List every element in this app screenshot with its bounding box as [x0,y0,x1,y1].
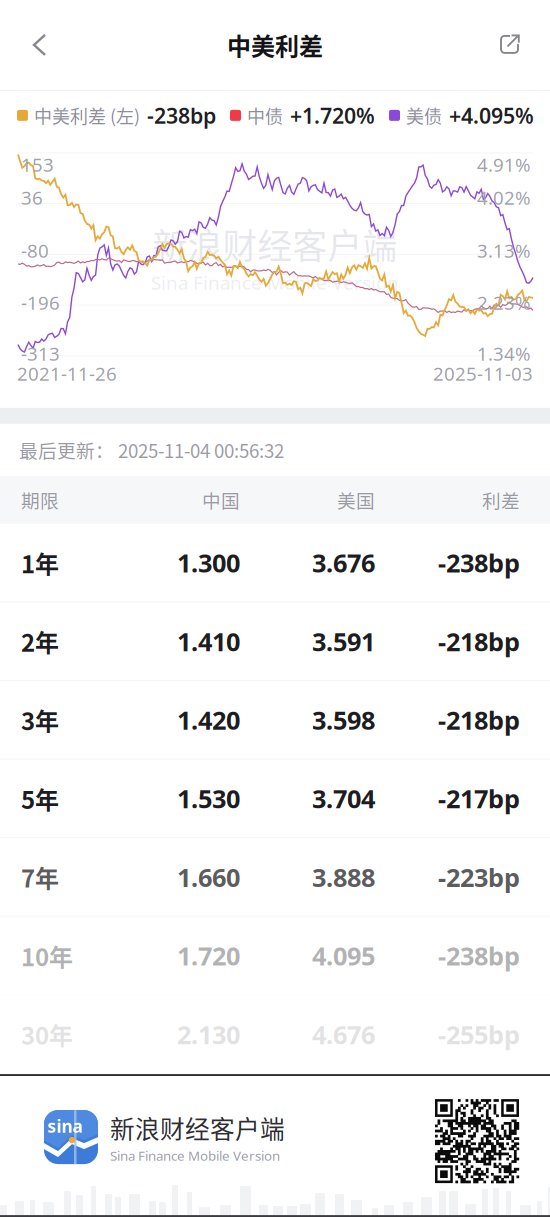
staticText: 10年 [21,938,73,973]
staticText: 中美利差 [227,27,323,62]
staticText: Sina Finance Mobile Version [110,1147,280,1164]
staticText: 4.095 [312,939,375,972]
staticText: sina [47,1115,82,1138]
staticText: 5年 [21,781,59,816]
staticText: 美国 [337,486,375,513]
staticText: -217bp [438,782,520,815]
button[interactable]: 5年 [0,760,550,838]
staticText: 中美利差 (左) [34,102,140,128]
staticText: -313 [21,341,60,366]
staticText: 1.530 [177,782,240,815]
button[interactable]: Share [479,16,541,74]
staticText: +4.095% [449,101,534,129]
staticText: 2021-11-26 [17,361,117,386]
staticText: 1.660 [177,860,240,894]
staticText: 3.704 [312,782,375,815]
staticText: 4.91% [477,152,531,177]
staticText: 3年 [21,702,59,737]
staticText: 1.34% [477,341,531,366]
staticText: -223bp [438,860,520,894]
staticText: 3.598 [312,703,375,737]
staticText: Sina Finance Mobile Version [151,270,399,295]
button[interactable]: 3年 [0,681,550,760]
staticText: 153 [21,152,54,177]
staticText: 1.720 [177,939,240,972]
staticText: +1.720% [290,101,375,129]
staticText: 利差 [482,486,520,513]
button[interactable]: 1年 [0,524,550,602]
staticText: 中国 [202,486,240,513]
staticText: -238bp [438,939,520,972]
staticText: 4.676 [312,1017,375,1051]
staticText: -196 [21,290,60,315]
staticText: -80 [21,238,49,263]
staticText: 3.676 [312,546,375,579]
staticText: 1.420 [177,703,240,737]
staticText: 30年 [21,1017,73,1052]
staticText: 7年 [21,860,59,894]
button[interactable]: 7年 [0,838,550,917]
staticText: 4.02% [477,185,531,210]
staticText: 新浪财经客户端 [110,1110,285,1146]
staticText: 36 [21,185,43,210]
staticText: 新浪财经客户端 [152,219,397,269]
staticText: -218bp [438,703,520,737]
staticText: 3.591 [312,624,375,658]
staticText: 2年 [21,624,59,659]
staticText: 2.23% [477,290,531,315]
staticText: -238bp [147,101,216,129]
staticText: -238bp [438,546,520,579]
staticText: 3.888 [312,860,375,894]
button[interactable]: 2年 [0,602,550,681]
staticText: 最后更新： 2025-11-04 00:56:32 [19,436,284,463]
staticText: 3.13% [477,238,531,263]
button[interactable]: 30年 [0,995,550,1074]
staticText: 中债 [247,102,283,128]
button[interactable]: 10年 [0,917,550,995]
staticText: -255bp [438,1017,520,1051]
button[interactable]: Back [9,16,71,74]
staticText: 1.410 [177,624,240,658]
staticText: 1年 [21,545,59,580]
staticText: 美债 [406,102,442,128]
staticText: 期限 [21,486,59,513]
staticText: 2.130 [177,1017,240,1051]
staticText: -218bp [438,624,520,658]
staticText: 1.300 [177,546,240,579]
staticText: 2025-11-03 [433,361,533,386]
